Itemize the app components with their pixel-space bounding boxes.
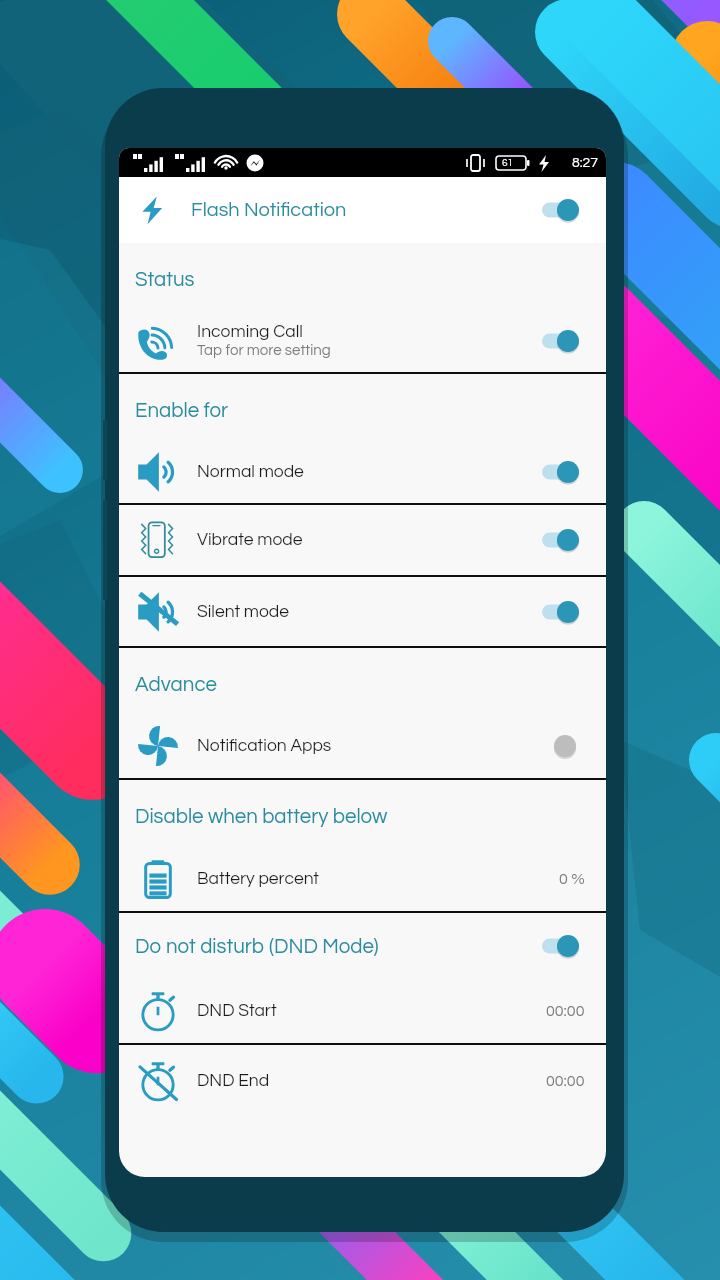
button[interactable]: Normal mode bbox=[119, 440, 606, 503]
staticText: 8:27 bbox=[572, 156, 598, 170]
button[interactable]: DND Start bbox=[119, 979, 606, 1043]
button[interactable]: Toggle bbox=[541, 733, 579, 759]
staticText: Tap for more setting bbox=[197, 343, 331, 358]
staticText: 00:00 bbox=[546, 1073, 585, 1089]
button[interactable]: Vibrate mode bbox=[119, 505, 606, 575]
button[interactable]: Toggle bbox=[541, 197, 579, 223]
staticText: 61 bbox=[502, 158, 513, 168]
button[interactable]: Battery percent bbox=[119, 846, 606, 911]
staticText: Vibrate mode bbox=[197, 531, 303, 549]
staticText: 0 % bbox=[559, 871, 585, 887]
button[interactable]: Toggle bbox=[541, 933, 579, 959]
staticText: Battery percent bbox=[197, 870, 320, 888]
staticText: Incoming Call bbox=[197, 323, 303, 341]
button[interactable]: Toggle bbox=[541, 459, 579, 485]
button[interactable]: Do not disturb (DND Mode) bbox=[119, 913, 606, 979]
staticText: Advance bbox=[135, 674, 217, 695]
staticText: Silent mode bbox=[197, 603, 290, 621]
staticText: 00:00 bbox=[546, 1003, 585, 1019]
staticText: Notification Apps bbox=[197, 737, 332, 755]
staticText: Disable when battery below bbox=[135, 806, 388, 827]
button[interactable]: Incoming Call bbox=[119, 309, 606, 372]
button[interactable]: DND End bbox=[119, 1045, 606, 1117]
staticText: Do not disturb (DND Mode) bbox=[135, 936, 379, 957]
staticText: DND Start bbox=[197, 1002, 277, 1020]
button[interactable]: Toggle bbox=[541, 527, 579, 553]
staticText: Normal mode bbox=[197, 463, 304, 481]
staticText: DND End bbox=[197, 1072, 270, 1090]
staticText: Status bbox=[135, 269, 195, 290]
staticText: Enable for bbox=[135, 400, 229, 421]
button[interactable]: Toggle bbox=[541, 328, 579, 354]
button[interactable]: Silent mode bbox=[119, 577, 606, 646]
button[interactable]: Toggle bbox=[541, 599, 579, 625]
staticText: Flash Notification bbox=[191, 200, 347, 221]
button[interactable]: Notification Apps bbox=[119, 714, 606, 778]
